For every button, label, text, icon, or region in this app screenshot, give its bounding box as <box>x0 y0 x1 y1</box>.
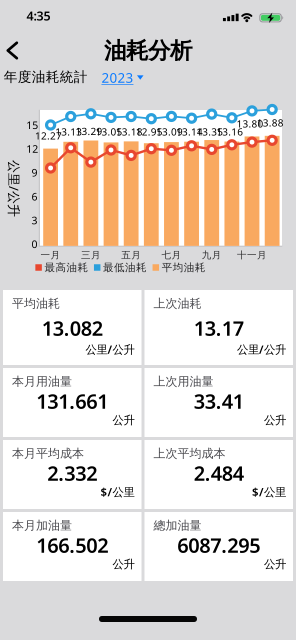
staticText: 12.95 <box>136 125 163 138</box>
staticText: 公升 <box>264 557 286 571</box>
staticText: 九月 <box>202 249 222 261</box>
staticText: 本月加油量 <box>12 518 72 533</box>
staticText: 2.332 <box>47 459 97 487</box>
button[interactable]: Back <box>3 38 21 62</box>
staticText: 0 <box>32 237 38 251</box>
staticText: 公里/公升 <box>237 341 286 357</box>
staticText: 13.09 <box>156 125 183 138</box>
staticText: 13.35 <box>196 125 223 138</box>
staticText: $/公里 <box>252 484 286 499</box>
staticText: 三月 <box>81 249 101 261</box>
staticText: 油耗分析 <box>104 37 192 65</box>
staticText: 本月平均成本 <box>12 446 84 461</box>
staticText: 13.29 <box>75 124 102 138</box>
staticText: 平均油耗 <box>162 261 206 274</box>
staticText: 131.661 <box>36 387 108 415</box>
staticText: 33.41 <box>194 387 244 415</box>
staticText: 公里/公升 <box>85 341 134 357</box>
staticText: 15 <box>26 118 38 132</box>
staticText: 一月 <box>41 249 61 261</box>
staticText: 公升 <box>112 413 134 427</box>
staticText: 2.484 <box>194 459 244 487</box>
staticText: 13.17 <box>194 314 244 342</box>
staticText: 公升 <box>112 557 134 571</box>
staticText: 最高油耗 <box>44 261 88 274</box>
staticText: 總加油量 <box>153 518 201 533</box>
staticText: 13.05 <box>95 125 122 138</box>
staticText: 6087.295 <box>177 531 260 559</box>
staticText: 五月 <box>121 249 141 261</box>
staticText: 6 <box>32 189 38 203</box>
staticText: 13.14 <box>176 125 203 138</box>
staticText: 2023 <box>101 68 133 87</box>
staticText: 上次油耗 <box>153 296 201 311</box>
staticText: 12 <box>26 142 38 156</box>
staticText: 七月 <box>161 249 181 261</box>
staticText: 公里/公升 <box>0 180 42 197</box>
staticText: 上次平均成本 <box>153 446 225 461</box>
staticText: 13.80 <box>236 117 263 130</box>
button[interactable]: 2023 <box>98 65 147 90</box>
staticText: 十一月 <box>237 249 267 261</box>
staticText: 平均油耗 <box>12 296 60 311</box>
staticText: 13.082 <box>42 314 103 342</box>
staticText: 9 <box>32 165 38 180</box>
staticText: 3 <box>32 213 38 227</box>
staticText: 上次用油量 <box>153 374 213 389</box>
staticText: 13.16 <box>216 125 243 138</box>
staticText: 12.27 <box>35 129 62 142</box>
staticText: 公升 <box>264 413 286 427</box>
staticText: 166.502 <box>36 531 108 559</box>
staticText: 本月用油量 <box>12 374 72 389</box>
staticText: 年度油耗統計 <box>4 68 88 85</box>
staticText: $/公里 <box>100 484 134 499</box>
staticText: 13.88 <box>257 116 284 129</box>
staticText: 13.13 <box>55 125 82 138</box>
staticText: 4:35 <box>26 7 50 24</box>
staticText: 最低油耗 <box>103 261 147 274</box>
staticText: 13.18 <box>116 125 143 138</box>
